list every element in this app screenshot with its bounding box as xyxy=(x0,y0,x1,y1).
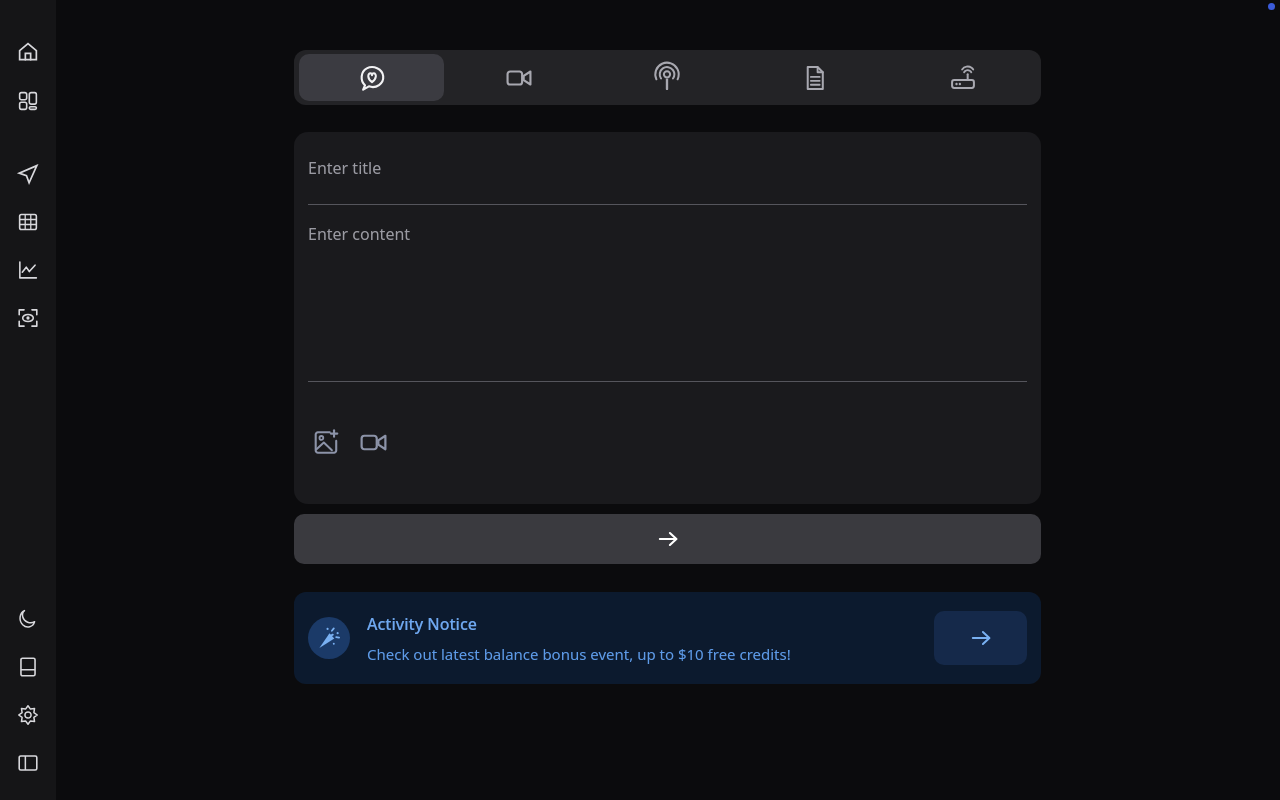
button[interactable]: Broadcast xyxy=(594,54,740,101)
button[interactable]: Open activity xyxy=(934,611,1027,665)
button[interactable]: Submit xyxy=(294,514,1041,564)
button[interactable]: Dark mode xyxy=(12,603,44,635)
button[interactable]: Toggle panel xyxy=(12,747,44,779)
button[interactable]: Router xyxy=(890,54,1036,101)
staticText: Enter content xyxy=(308,223,411,245)
button[interactable]: Add image xyxy=(306,422,346,462)
button[interactable]: Enter content xyxy=(308,205,1027,381)
button[interactable]: Send xyxy=(12,158,44,190)
staticText: Activity Notice xyxy=(367,613,477,635)
button[interactable]: Analytics xyxy=(12,254,44,286)
button[interactable]: Enter title xyxy=(308,132,1027,204)
staticText: Enter title xyxy=(308,157,382,179)
button[interactable]: Chat xyxy=(299,54,444,101)
button[interactable]: Document xyxy=(742,54,888,101)
button[interactable]: Grid xyxy=(12,206,44,238)
button[interactable]: Video xyxy=(446,54,592,101)
button[interactable]: Activity Notice xyxy=(294,592,1041,684)
button[interactable]: Settings xyxy=(12,699,44,731)
button[interactable]: Scan xyxy=(12,302,44,334)
button[interactable]: Add video xyxy=(353,422,393,462)
button[interactable]: Dashboard xyxy=(12,85,44,117)
button[interactable]: Home xyxy=(12,36,44,68)
staticText: Check out latest balance bonus event, up… xyxy=(367,644,791,664)
button[interactable]: Docs xyxy=(12,651,44,683)
